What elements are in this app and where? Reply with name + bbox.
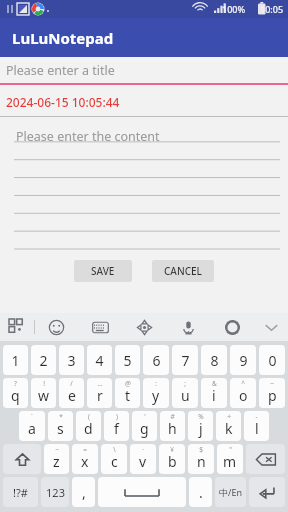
staticText: k — [225, 419, 233, 438]
button[interactable]: . — [189, 477, 212, 507]
button[interactable]: ~ — [259, 378, 285, 408]
button[interactable]: Backspace — [246, 444, 285, 474]
staticText: 中/En — [219, 486, 242, 498]
staticText: ¥ — [170, 445, 174, 454]
button[interactable]: 0 — [259, 345, 285, 375]
button[interactable]: 3 — [59, 345, 84, 375]
button[interactable]: 9 — [230, 345, 256, 375]
staticText: 3 — [67, 351, 76, 370]
staticText: $ — [199, 445, 203, 454]
staticText: CANCEL — [164, 264, 202, 278]
button[interactable]: 6 — [143, 345, 169, 375]
button[interactable]: 2024-06-15 10:05:44 — [0, 92, 288, 112]
button[interactable]: 7 — [172, 345, 198, 375]
button[interactable]: * — [48, 411, 73, 441]
staticText: ^ — [241, 379, 245, 388]
staticText: 2024-06-15 10:05:44 — [6, 94, 120, 110]
staticText: ~ — [55, 445, 59, 454]
button[interactable]: Voice input — [166, 313, 210, 341]
staticText: 100% — [222, 3, 246, 15]
button[interactable]: ^ — [230, 378, 256, 408]
button[interactable]: Settings — [210, 313, 254, 341]
button[interactable]: & — [201, 378, 227, 408]
button[interactable]: Enter — [249, 477, 285, 507]
staticText: @ — [125, 379, 131, 388]
staticText: v — [139, 452, 147, 471]
button[interactable]: ( — [76, 411, 101, 441]
staticText: 5 — [123, 351, 132, 370]
staticText: \ — [113, 445, 116, 454]
button[interactable]: - — [244, 411, 269, 441]
button[interactable]: ; — [172, 378, 198, 408]
button[interactable]: Move cursor — [122, 313, 166, 341]
button[interactable]: 中/En — [215, 477, 246, 507]
button[interactable]: ¥ — [159, 444, 185, 474]
staticText: f — [114, 419, 119, 438]
staticText: 2 — [39, 351, 48, 370]
button[interactable]: 123 — [41, 477, 69, 507]
button[interactable]: : — [143, 378, 169, 408]
button[interactable]: = — [72, 444, 98, 474]
button[interactable]: " — [217, 444, 243, 474]
button[interactable]: 2 — [31, 345, 56, 375]
button[interactable]: @ — [115, 378, 140, 408]
button[interactable]: !?# — [3, 477, 38, 507]
button[interactable]: + — [216, 411, 241, 441]
staticText: , — [82, 483, 86, 502]
staticText: e — [68, 386, 76, 405]
button[interactable]: Hide keyboard — [254, 313, 288, 341]
button[interactable]: ) — [104, 411, 129, 441]
button[interactable]: 1 — [3, 345, 28, 375]
button[interactable]: · — [130, 444, 156, 474]
button[interactable]: ? — [3, 378, 28, 408]
button[interactable]: Please enter a title — [0, 57, 288, 83]
staticText: n — [197, 452, 206, 471]
button[interactable]: # — [160, 411, 185, 441]
staticText: ( — [88, 412, 90, 421]
button[interactable]: CANCEL — [152, 260, 214, 282]
staticText: - — [255, 412, 258, 421]
button[interactable]: ' — [132, 411, 157, 441]
button[interactable]: LuLuNotepad — [0, 18, 288, 57]
staticText: = — [83, 445, 87, 454]
button[interactable]: % — [188, 411, 213, 441]
button[interactable]: , — [72, 477, 95, 507]
button[interactable]: ! — [31, 378, 56, 408]
button[interactable]: 5 — [115, 345, 140, 375]
staticText: ) — [116, 412, 118, 421]
staticText: ! — [43, 379, 45, 388]
button[interactable]: / — [59, 378, 84, 408]
staticText: h — [168, 419, 177, 438]
button[interactable]: Shift — [3, 444, 41, 474]
button[interactable]: 8 — [201, 345, 227, 375]
staticText: 0 — [268, 351, 277, 370]
button[interactable]: SAVE — [74, 260, 132, 282]
staticText: + — [227, 412, 231, 421]
staticText: % — [198, 412, 204, 421]
staticText: o — [239, 386, 248, 405]
staticText: " — [229, 445, 232, 454]
button[interactable]: \ — [101, 444, 127, 474]
button[interactable]: ~ — [44, 444, 69, 474]
staticText: z — [53, 452, 60, 471]
staticText: / — [70, 379, 73, 388]
button[interactable]: Please enter the content — [0, 127, 288, 252]
staticText: # — [170, 412, 175, 421]
button[interactable]: 4 — [87, 345, 112, 375]
button[interactable]: … — [87, 378, 112, 408]
staticText: & — [212, 379, 217, 388]
staticText: 123 — [46, 485, 65, 500]
staticText: · — [142, 445, 144, 454]
button[interactable]: Keyboard layout — [78, 313, 122, 341]
button[interactable]: Input methods — [0, 313, 34, 341]
button[interactable]: ` — [19, 411, 45, 441]
staticText: i — [212, 386, 216, 405]
button[interactable]: $ — [188, 444, 214, 474]
staticText: s — [57, 419, 64, 438]
button[interactable]: Space — [98, 477, 186, 507]
button[interactable]: Emoji — [35, 313, 78, 341]
staticText: 4 — [95, 351, 104, 370]
staticText: c — [111, 452, 118, 471]
staticText: 7 — [181, 351, 190, 370]
staticText: l — [255, 419, 259, 438]
